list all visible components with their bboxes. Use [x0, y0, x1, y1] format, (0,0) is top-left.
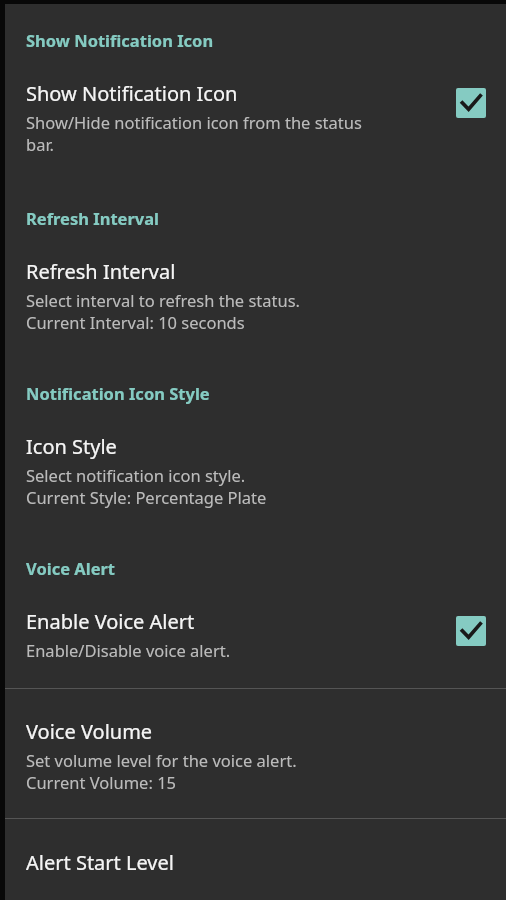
staticText: Current Volume: 15: [26, 771, 177, 793]
staticText: Notification Icon Style: [26, 382, 210, 404]
staticText: Show Notification Icon: [26, 29, 214, 51]
staticText: Show Notification Icon: [26, 80, 238, 107]
staticText: Select notification icon style.: [26, 464, 246, 486]
button[interactable]: Refresh Interval: [5, 258, 506, 333]
staticText: Icon Style: [26, 433, 117, 460]
staticText: Voice Volume: [26, 718, 153, 745]
button[interactable]: Voice Volume: [5, 718, 506, 793]
staticText: Current Interval: 10 seconds: [26, 311, 245, 333]
staticText: bar.: [26, 133, 55, 155]
staticText: Select interval to refresh the status.: [26, 289, 301, 311]
staticText: Set volume level for the voice alert.: [26, 749, 297, 771]
staticText: Enable Voice Alert: [26, 608, 195, 635]
button[interactable]: Show Notification Icon: [5, 80, 506, 155]
staticText: Current Style: Percentage Plate: [26, 486, 267, 508]
other: Enable voice alert toggle: [456, 616, 486, 646]
other: Show notification icon toggle: [456, 88, 486, 118]
staticText: Voice Alert: [26, 557, 116, 579]
staticText: Refresh Interval: [26, 258, 176, 285]
staticText: Show/Hide notification icon from the sta…: [26, 111, 362, 133]
button[interactable]: Alert Start Level: [5, 849, 506, 876]
staticText: Alert Start Level: [26, 849, 174, 876]
staticText: Enable/Disable voice alert.: [26, 639, 231, 661]
button[interactable]: Enable Voice Alert: [5, 608, 506, 661]
button[interactable]: Icon Style: [5, 433, 506, 508]
staticText: Refresh Interval: [26, 207, 160, 229]
